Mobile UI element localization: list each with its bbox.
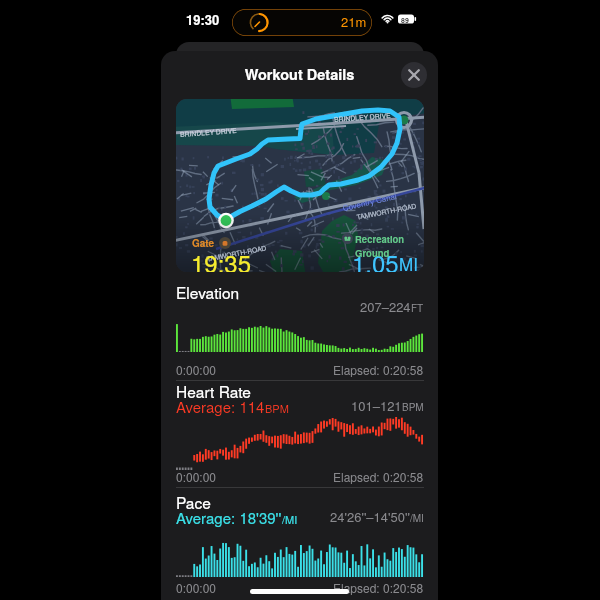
staticText: BPM	[402, 400, 424, 414]
staticText: BPM	[265, 400, 289, 416]
staticText: Pace	[176, 491, 211, 513]
staticText: 1.05	[352, 245, 399, 272]
staticText: Average: 18'39''	[176, 507, 282, 528]
staticText: 0:00:00	[176, 361, 217, 378]
staticText: Heart Rate	[176, 380, 251, 402]
staticText: 101–121	[351, 396, 402, 415]
staticText: Ground	[355, 246, 390, 260]
staticText: Recreation	[355, 232, 405, 246]
staticText: /MI	[410, 511, 424, 525]
staticText: Elapsed: 0:20:58	[333, 361, 424, 378]
staticText: 207–224	[360, 297, 411, 316]
staticText: Workout Details	[161, 64, 438, 85]
staticText: Elapsed: 0:20:58	[333, 579, 424, 596]
staticText: BRINDLEY DRIVE	[180, 125, 237, 139]
staticText: 19:35	[191, 245, 252, 272]
staticText: 0:00:00	[176, 468, 217, 485]
staticText: /MI	[282, 511, 298, 527]
staticText: Elevation	[176, 281, 240, 303]
staticText: TAMWORTH-ROAD	[356, 200, 417, 222]
staticText: Coventry Canal	[341, 190, 398, 213]
staticText: Gate	[192, 236, 215, 250]
staticText: 19:30	[186, 10, 220, 29]
staticText: FT	[411, 301, 424, 315]
staticText: TAMWORTH-ROAD	[206, 242, 267, 264]
staticText: 24'26''–14'50''	[330, 507, 410, 526]
staticText: Elapsed: 0:20:58	[333, 468, 424, 485]
staticText: Average: 114	[176, 396, 265, 417]
staticText: BRINDLEY DRIVE	[334, 110, 391, 124]
staticText: 21m	[341, 12, 367, 31]
staticText: MI	[399, 251, 418, 272]
staticText: 89	[401, 15, 409, 25]
button[interactable]: Close	[401, 62, 427, 88]
staticText: 0:00:00	[176, 579, 217, 596]
button[interactable]: Live activity timer	[232, 9, 372, 36]
staticText: TAMWORTH-ROAD	[423, 153, 424, 215]
